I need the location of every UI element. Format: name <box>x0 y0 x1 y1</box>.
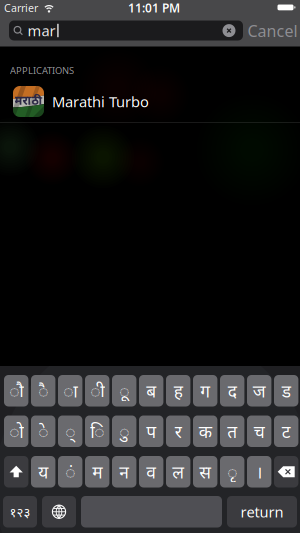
button[interactable]: Cancel <box>243 21 300 41</box>
button[interactable]: द <box>220 375 244 406</box>
staticText: 11:01 PM <box>128 0 180 16</box>
button[interactable]: Search <box>9 20 243 40</box>
button[interactable]: ो <box>4 415 28 447</box>
staticText: ा <box>63 379 77 402</box>
button[interactable]: म <box>85 456 109 487</box>
staticText: प <box>146 420 156 443</box>
staticText: ो <box>9 420 23 443</box>
button[interactable]: ज <box>247 375 271 406</box>
button[interactable]: ु <box>112 415 136 447</box>
button[interactable]: ् <box>58 415 82 447</box>
staticText: mar <box>27 21 55 40</box>
staticText: स <box>199 460 211 483</box>
button[interactable]: ौ <box>4 375 28 406</box>
staticText: ू <box>119 379 129 402</box>
staticText: क <box>199 420 212 443</box>
button[interactable]: ट <box>274 415 298 447</box>
staticText: ज <box>253 379 266 402</box>
button[interactable]: र <box>166 415 190 447</box>
button[interactable]: ब <box>139 375 163 406</box>
staticText: ब <box>146 379 156 402</box>
staticText: द <box>228 379 237 402</box>
button[interactable]: Space <box>81 496 222 527</box>
button[interactable]: Clear text <box>221 23 237 39</box>
staticText: ह <box>174 379 183 402</box>
staticText: APPLICATIONS <box>10 64 74 77</box>
staticText: ट <box>282 420 291 443</box>
staticText: े <box>38 420 48 443</box>
staticText: मराठी <box>14 92 42 108</box>
button[interactable]: return <box>227 496 297 527</box>
button[interactable]: । <box>247 456 271 487</box>
staticText: र <box>175 420 182 443</box>
button[interactable]: क <box>193 415 217 447</box>
button[interactable]: स <box>193 456 217 487</box>
button[interactable]: Next keyboard <box>42 496 76 527</box>
staticText: return <box>240 502 283 521</box>
staticText: Marathi Turbo <box>52 92 149 111</box>
button[interactable]: ू <box>112 375 136 406</box>
button[interactable]: Shift <box>4 456 28 487</box>
staticText: ि <box>90 420 104 443</box>
button[interactable]: य <box>31 456 55 487</box>
button[interactable]: च <box>247 415 271 447</box>
button[interactable]: प <box>139 415 163 447</box>
staticText: त <box>227 420 237 443</box>
staticText: Cancel <box>247 20 297 41</box>
button[interactable]: त <box>220 415 244 447</box>
button[interactable]: ै <box>31 375 55 406</box>
button[interactable]: ृ <box>220 456 244 487</box>
button[interactable]: न <box>112 456 136 487</box>
button[interactable]: ग <box>193 375 217 406</box>
staticText: ल <box>172 460 184 483</box>
staticText: ौ <box>9 379 23 402</box>
staticText: ै <box>38 379 48 402</box>
button[interactable]: ल <box>166 456 190 487</box>
button[interactable]: े <box>31 415 55 447</box>
staticText: ड <box>282 379 291 402</box>
staticText: ी <box>90 379 104 402</box>
staticText: ु <box>119 420 129 443</box>
staticText: ् <box>65 420 75 443</box>
button[interactable]: Delete <box>274 456 298 487</box>
button[interactable]: व <box>139 456 163 487</box>
button[interactable]: ं <box>58 456 82 487</box>
staticText: य <box>38 460 48 483</box>
staticText: ं <box>65 460 75 483</box>
staticText: व <box>146 460 156 483</box>
staticText: Carrier <box>4 1 38 15</box>
button[interactable]: ह <box>166 375 190 406</box>
staticText: ृ <box>227 460 237 483</box>
button[interactable]: मराठी <box>0 81 300 122</box>
staticText: ग <box>200 379 210 402</box>
button[interactable]: ी <box>85 375 109 406</box>
button[interactable]: ा <box>58 375 82 406</box>
staticText: न <box>119 460 129 483</box>
button[interactable]: ड <box>274 375 298 406</box>
button[interactable]: Numbers <box>3 496 37 527</box>
button[interactable]: ि <box>85 415 109 447</box>
staticText: । <box>256 460 263 483</box>
staticText: च <box>254 420 265 443</box>
staticText: म <box>92 460 102 483</box>
staticText: १२३ <box>9 503 30 521</box>
